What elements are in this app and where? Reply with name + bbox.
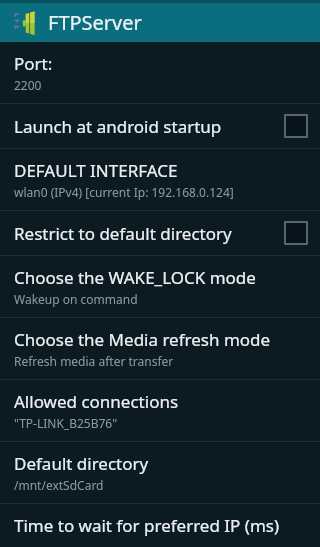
other: Launch at android startup: [284, 114, 308, 138]
button[interactable]: Default directory: [0, 442, 320, 504]
staticText: Restrict to default directory: [14, 222, 232, 245]
staticText: Port:: [14, 52, 53, 75]
button[interactable]: Choose the Media refresh mode: [0, 318, 320, 380]
staticText: Choose the Media refresh mode: [14, 328, 271, 351]
staticText: FTPServer: [48, 9, 142, 36]
staticText: "TP-LINK_B25B76": [14, 415, 118, 431]
staticText: Allowed connections: [14, 390, 179, 413]
button[interactable]: Choose the WAKE_LOCK mode: [0, 256, 320, 318]
button[interactable]: Allowed connections: [0, 380, 320, 442]
staticText: /mnt/extSdCard: [14, 477, 104, 493]
staticText: Launch at android startup: [14, 115, 222, 138]
button[interactable]: Time to wait for preferred IP (ms): [0, 504, 320, 547]
staticText: wlan0 (IPv4) [current Ip: 192.168.0.124]: [14, 184, 234, 200]
button[interactable]: Port:: [0, 42, 320, 104]
staticText: Choose the WAKE_LOCK mode: [14, 266, 256, 289]
staticText: Refresh media after transfer: [14, 353, 174, 369]
button[interactable]: Restrict to default directory: [0, 211, 320, 256]
staticText: Wakeup on command: [14, 291, 138, 307]
staticText: DEFAULT INTERFACE: [14, 159, 178, 182]
staticText: Default directory: [14, 452, 149, 475]
button[interactable]: Launch at android startup: [0, 104, 320, 149]
other: Restrict to default directory: [284, 221, 308, 245]
staticText: 2200: [14, 77, 42, 93]
button[interactable]: DEFAULT INTERFACE: [0, 149, 320, 211]
staticText: Time to wait for preferred IP (ms): [14, 514, 280, 537]
